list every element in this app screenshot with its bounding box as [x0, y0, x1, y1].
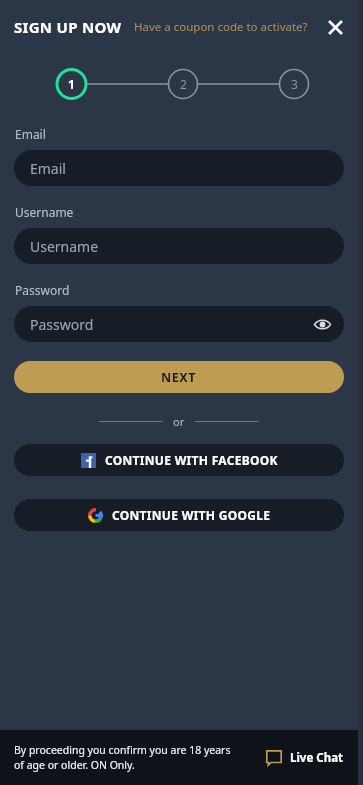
button[interactable]: NEXT [14, 361, 344, 393]
button[interactable]: CONTINUE WITH GOOGLE [14, 499, 344, 531]
button[interactable]: Close [322, 14, 348, 40]
staticText: Email [15, 126, 46, 142]
staticText: By proceeding you confirm you are 18 yea… [14, 743, 262, 772]
staticText: Username [30, 237, 99, 256]
button[interactable]: Show password [310, 312, 334, 336]
staticText: Live Chat [290, 750, 344, 766]
button[interactable]: Have a coupon code to activate? [132, 15, 310, 39]
staticText: Have a coupon code to activate? [134, 19, 308, 35]
staticText: CONTINUE WITH GOOGLE [112, 507, 271, 523]
button[interactable]: Password [14, 306, 344, 342]
staticText: 2 [180, 76, 187, 92]
staticText: Username [15, 204, 74, 220]
button[interactable]: Live Chat [262, 744, 348, 772]
staticText: 3 [291, 76, 298, 92]
button[interactable]: Username [14, 228, 344, 264]
staticText: Email [30, 159, 66, 178]
staticText: CONTINUE WITH FACEBOOK [105, 452, 278, 468]
staticText: Password [30, 315, 94, 334]
staticText: NEXT [161, 369, 197, 386]
staticText: SIGN UP NOW [14, 17, 122, 37]
button[interactable]: Email [14, 150, 344, 186]
staticText: Password [15, 282, 70, 298]
staticText: 1 [68, 76, 75, 92]
staticText: or [173, 414, 185, 429]
button[interactable]: CONTINUE WITH FACEBOOK [14, 444, 344, 476]
